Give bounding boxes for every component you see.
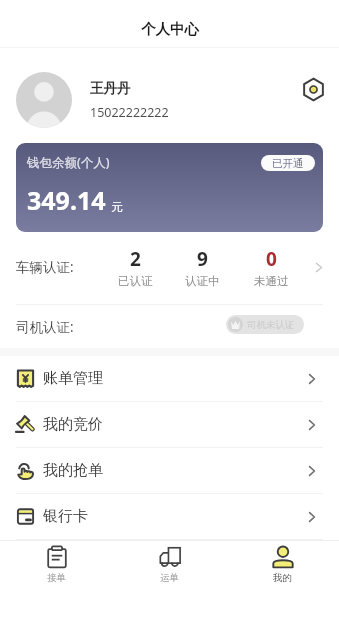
button[interactable]: 钱包余额(个人) <box>16 143 323 232</box>
staticText: 账单管理 <box>43 369 103 388</box>
button[interactable]: 司机认证: <box>0 305 339 348</box>
staticText: 15022222222 <box>90 104 169 121</box>
staticText: 已认证 <box>118 274 153 288</box>
staticText: 个人中心 <box>141 20 199 38</box>
staticText: 元 <box>111 200 123 214</box>
button[interactable]: 已开通 <box>261 155 315 171</box>
button[interactable]: 车辆认证: <box>0 232 339 304</box>
button[interactable]: 我的竞价 <box>0 402 339 447</box>
button[interactable]: 接单 <box>0 541 113 585</box>
button[interactable]: 银行卡 <box>0 494 339 539</box>
staticText: 司机未认证 <box>247 319 295 331</box>
staticText: 钱包余额(个人) <box>27 154 110 171</box>
button[interactable]: 账单管理 <box>0 356 339 401</box>
button[interactable]: Settings <box>300 76 326 102</box>
staticText: 我的抢单 <box>43 461 103 480</box>
staticText: 2 <box>130 246 141 272</box>
staticText: 349.14 <box>27 183 106 217</box>
button[interactable]: 我的 <box>226 541 339 585</box>
staticText: 9 <box>197 246 208 272</box>
staticText: 已开通 <box>272 157 304 170</box>
staticText: 我的竞价 <box>43 415 103 434</box>
button[interactable]: 运单 <box>113 541 226 585</box>
staticText: 车辆认证: <box>16 258 74 276</box>
staticText: 司机认证: <box>16 318 74 336</box>
button[interactable]: 我的抢单 <box>0 448 339 493</box>
staticText: 未通过 <box>254 274 289 288</box>
staticText: 运单 <box>160 572 179 584</box>
staticText: 接单 <box>47 572 66 584</box>
button[interactable]: 王丹丹 <box>0 48 339 143</box>
staticText: 王丹丹 <box>90 80 131 97</box>
staticText: 银行卡 <box>43 507 88 526</box>
staticText: 我的 <box>273 572 292 584</box>
staticText: 0 <box>266 246 277 272</box>
staticText: 认证中 <box>185 274 220 288</box>
